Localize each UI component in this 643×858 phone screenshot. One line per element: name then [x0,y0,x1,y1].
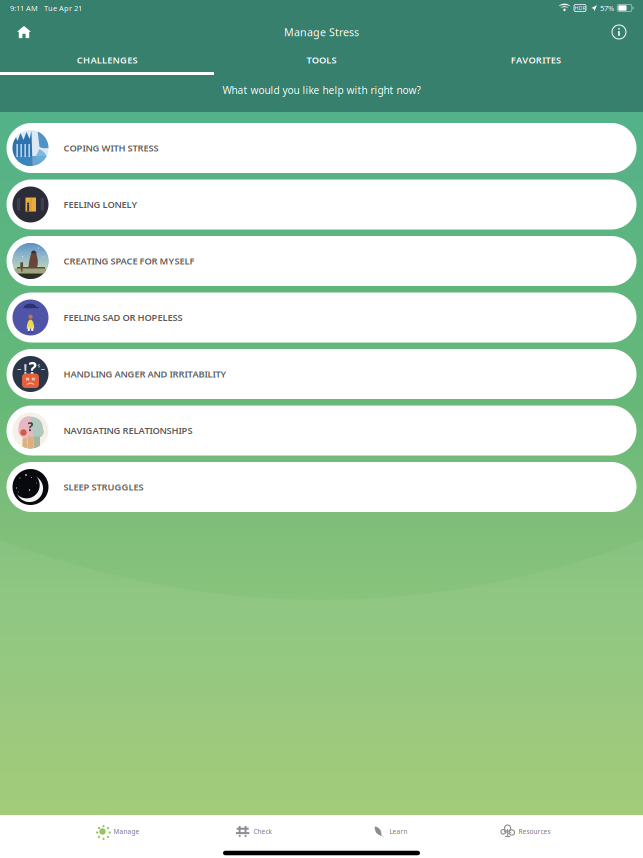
staticText: Tue Apr 21 [38,3,82,13]
button[interactable]: ? [6,405,636,455]
staticText: ? [28,356,36,380]
staticText: Learn [389,827,407,836]
staticText: SLEEP STRUGGLES [63,481,143,493]
button[interactable]: Manage [95,815,139,848]
staticText: Check [253,827,271,836]
staticText: ! [23,360,27,378]
button[interactable]: Resources [500,815,550,848]
staticText: CHALLENGES [77,54,137,66]
staticText: NAVIGATING RELATIONSHIPS [63,424,192,437]
staticText: FEELING SAD OR HOPELESS [63,311,182,324]
button[interactable]: COPING WITH STRESS [6,123,636,173]
staticText: What would you like help with right now? [222,83,420,97]
button[interactable]: CREATING SPACE FOR MYSELF [6,236,636,286]
button[interactable]: Home [2,16,46,48]
button[interactable]: FAVORITES [429,48,643,72]
staticText: 57% [600,3,614,13]
staticText: Resources [518,827,550,836]
staticText: 9:11 AM [10,3,38,13]
staticText: COPING WITH STRESS [63,142,158,154]
button[interactable]: FEELING LONELY [6,179,636,229]
staticText: CREATING SPACE FOR MYSELF [63,255,194,267]
staticText: HANDLING ANGER AND IRRITABILITY [63,368,226,380]
staticText: TOOLS [306,54,337,66]
button[interactable]: FEELING SAD OR HOPELESS [6,292,636,342]
button[interactable]: SLEEP STRUGGLES [6,462,636,512]
staticText: HDR [574,4,585,12]
button[interactable]: ? [6,349,636,399]
staticText: FAVORITES [511,54,561,66]
button[interactable]: TOOLS [214,48,429,72]
button[interactable]: Learn [371,815,407,848]
staticText: Manage Stress [284,25,359,39]
staticText: FEELING LONELY [63,198,137,211]
button[interactable]: Check [235,815,271,848]
button[interactable]: CHALLENGES [0,48,214,72]
button[interactable]: Information [597,16,641,48]
staticText: ? [27,418,33,435]
staticText: Manage [113,827,139,836]
